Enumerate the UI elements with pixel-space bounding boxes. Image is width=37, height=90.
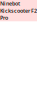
staticText: Ninebot Kickscooter F2 Pro [0,0,37,21]
